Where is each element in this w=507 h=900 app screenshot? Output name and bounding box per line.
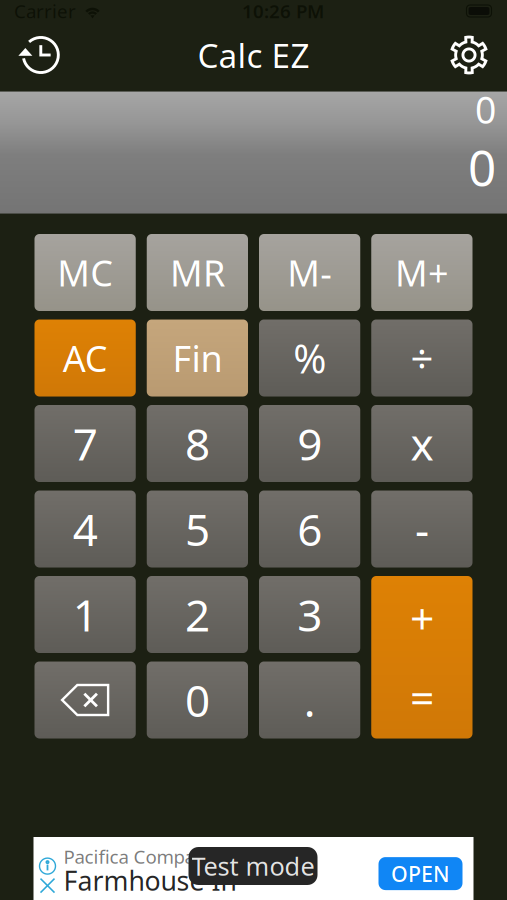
- button[interactable]: Settings: [437, 22, 501, 88]
- staticText: MR: [170, 249, 225, 296]
- staticText: M-: [287, 249, 332, 296]
- button[interactable]: .: [259, 661, 360, 738]
- button[interactable]: 9: [259, 405, 360, 482]
- button[interactable]: ÷: [371, 319, 472, 396]
- staticText: Test mode: [191, 849, 314, 883]
- staticText: OPEN: [391, 859, 450, 888]
- staticText: .: [304, 671, 316, 729]
- staticText: %: [293, 331, 326, 384]
- button[interactable]: Close ad: [39, 877, 56, 894]
- staticText: 10:26 PM: [242, 0, 324, 23]
- button[interactable]: +: [371, 576, 472, 738]
- button[interactable]: Ad information: [38, 857, 56, 875]
- button[interactable]: M-: [259, 234, 360, 311]
- staticText: -: [415, 500, 429, 558]
- staticText: 1: [73, 585, 98, 644]
- staticText: MC: [57, 249, 113, 296]
- button[interactable]: M+: [371, 234, 472, 311]
- staticText: 5: [185, 500, 210, 558]
- staticText: 2: [185, 585, 210, 644]
- staticText: Calc EZ: [197, 33, 309, 77]
- staticText: Carrier: [14, 0, 76, 23]
- staticText: 7: [73, 414, 98, 473]
- staticText: =: [410, 668, 434, 725]
- button[interactable]: 3: [259, 576, 360, 653]
- button[interactable]: x: [371, 405, 472, 482]
- button[interactable]: 1: [34, 576, 136, 653]
- staticText: ÷: [410, 331, 433, 384]
- staticText: AC: [63, 334, 108, 382]
- staticText: 0: [185, 671, 210, 729]
- staticText: 3: [297, 585, 322, 644]
- button[interactable]: 7: [34, 405, 136, 482]
- button[interactable]: [34, 661, 136, 738]
- staticText: x: [410, 414, 433, 473]
- button[interactable]: AC: [34, 319, 136, 396]
- staticText: +: [410, 590, 434, 646]
- button[interactable]: Fin: [147, 319, 248, 396]
- staticText: 4: [73, 500, 98, 558]
- button[interactable]: -: [371, 490, 472, 567]
- button[interactable]: 6: [259, 490, 360, 567]
- button[interactable]: 2: [147, 576, 248, 653]
- staticText: Farmhouse In: [63, 863, 236, 898]
- button[interactable]: 0: [147, 661, 248, 738]
- staticText: 6: [297, 500, 322, 558]
- button[interactable]: 8: [147, 405, 248, 482]
- button[interactable]: %: [259, 319, 360, 396]
- staticText: Pacifica Companies: [63, 844, 231, 869]
- staticText: 9: [297, 414, 322, 473]
- button[interactable]: MR: [147, 234, 248, 311]
- button[interactable]: 4: [34, 490, 136, 567]
- button[interactable]: OPEN: [378, 857, 462, 890]
- staticText: 8: [185, 414, 210, 473]
- button[interactable]: MC: [34, 234, 136, 311]
- button[interactable]: History: [6, 22, 70, 88]
- staticText: M+: [395, 249, 449, 296]
- button[interactable]: 5: [147, 490, 248, 567]
- staticText: Fin: [172, 334, 222, 382]
- staticText: 0: [475, 84, 496, 134]
- staticText: 0: [468, 134, 496, 199]
